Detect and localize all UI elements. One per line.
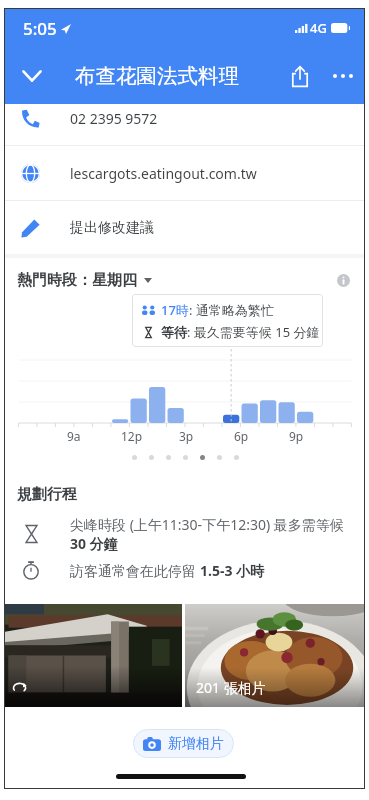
staticText: 17時 xyxy=(161,301,189,319)
button[interactable]: Collapse xyxy=(11,55,53,97)
button[interactable]: 星期四 xyxy=(92,271,152,290)
staticText: 規劃行程 xyxy=(17,485,77,504)
button[interactable]: Share xyxy=(279,55,321,97)
staticText: 12p xyxy=(121,428,143,444)
staticText: lescargots.eatingout.com.tw xyxy=(70,164,257,183)
button[interactable]: 尖峰時段 (上午11:30-下午12:30) 最多需等候 xyxy=(5,514,364,554)
staticText: 訪客通常會在此停留 xyxy=(70,561,200,580)
button[interactable]: 訪客通常會在此停留 xyxy=(5,554,364,586)
staticText: 1.5-3 小時 xyxy=(200,561,265,580)
staticText: 5:05 xyxy=(23,17,57,40)
staticText: 布查花園法式料理 xyxy=(75,63,239,89)
button[interactable]: 02 2395 9572 xyxy=(5,104,364,132)
button[interactable]: lescargots.eatingout.com.tw xyxy=(5,159,364,187)
staticText: 02 2395 9572 xyxy=(70,109,158,128)
staticText: 9a xyxy=(67,428,81,444)
button[interactable]: 新增相片 xyxy=(133,729,234,758)
button[interactable]: 提出修改建議 xyxy=(5,214,364,242)
button[interactable]: More options xyxy=(322,55,364,97)
staticText: 201 張相片 xyxy=(196,678,266,697)
staticText: 提出修改建議 xyxy=(70,219,154,237)
staticText: 6p xyxy=(234,428,249,444)
staticText: 4G xyxy=(310,19,327,37)
staticText: 3p xyxy=(179,428,194,444)
button[interactable]: Info xyxy=(333,270,353,290)
staticText: 尖峰時段 (上午11:30-下午12:30) 最多需等候 xyxy=(70,515,344,534)
button[interactable]: Food photo xyxy=(185,604,364,707)
staticText: 新增相片 xyxy=(168,735,224,753)
staticText: 等待 xyxy=(161,324,187,340)
staticText: 30 分鐘 xyxy=(70,534,118,553)
staticText: : 通常略為繁忙 xyxy=(189,301,274,319)
staticText: 9p xyxy=(289,428,304,444)
staticText: : 最久需要等候 15 分鐘 xyxy=(187,323,320,341)
button[interactable]: Street view photo xyxy=(5,604,182,707)
staticText: 星期四 xyxy=(92,271,137,290)
staticText: 熱門時段： xyxy=(17,271,92,290)
